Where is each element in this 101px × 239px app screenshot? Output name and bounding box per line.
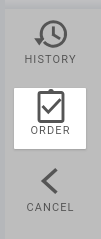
other: Order xyxy=(34,89,68,123)
staticText: ORDER xyxy=(30,124,71,137)
staticText: CANCEL xyxy=(26,201,75,214)
staticText: HISTORY xyxy=(24,53,77,66)
button[interactable]: Cancel xyxy=(0,160,101,230)
button[interactable]: Order xyxy=(14,88,86,149)
other: History xyxy=(34,17,68,51)
button[interactable]: History xyxy=(0,10,101,80)
other: Cancel xyxy=(34,164,68,198)
